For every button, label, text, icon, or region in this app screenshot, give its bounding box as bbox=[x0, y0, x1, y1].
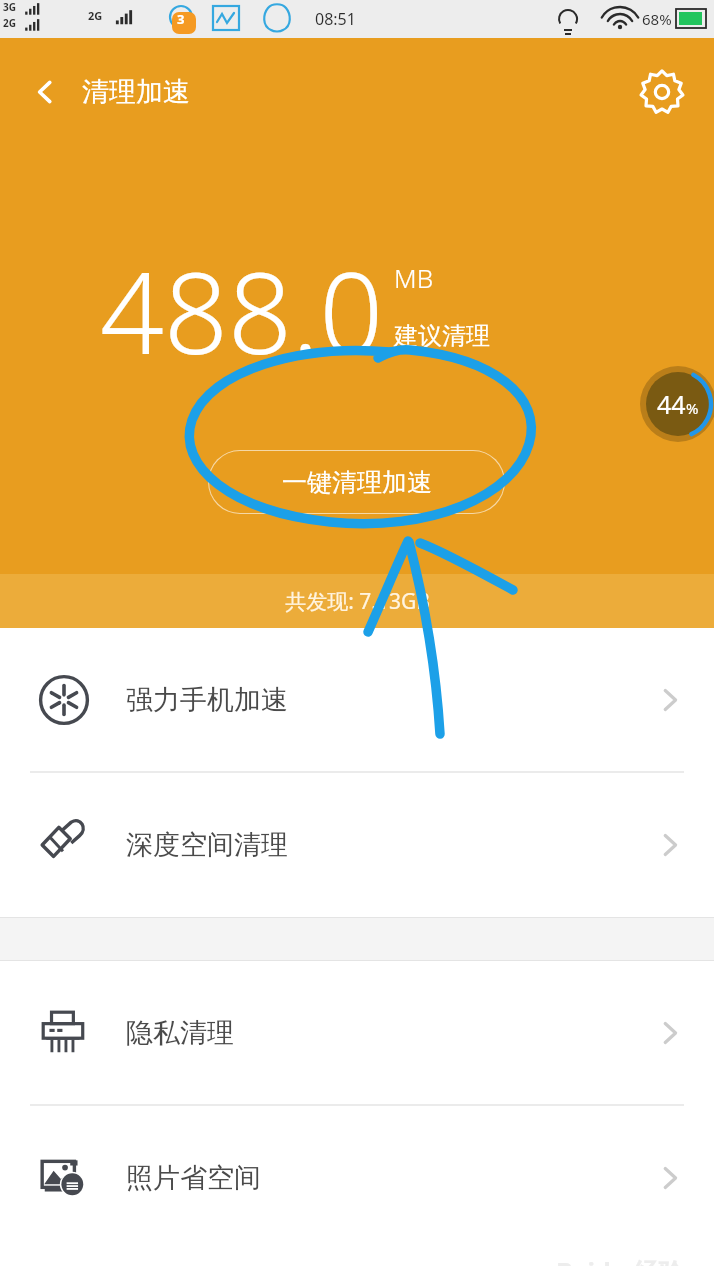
staticText: 3 bbox=[177, 10, 185, 28]
staticText: 68% bbox=[642, 9, 672, 29]
staticText: 深度空间清理 bbox=[126, 828, 288, 862]
staticText: 488.0 bbox=[100, 234, 384, 387]
staticText: 建议清理 bbox=[394, 321, 490, 351]
staticText: 44 bbox=[657, 387, 686, 421]
button[interactable]: 照片省空间 bbox=[0, 1106, 714, 1250]
button[interactable]: Settings bbox=[632, 62, 692, 122]
staticText: Baidu 经验 bbox=[556, 1254, 684, 1266]
staticText: 3G bbox=[3, 0, 16, 14]
staticText: 共发现: 7.13GB bbox=[285, 587, 430, 616]
staticText: 强力手机加速 bbox=[126, 683, 288, 717]
button[interactable]: Memory usage 44 percent bbox=[640, 366, 714, 442]
button[interactable]: 一键清理加速 bbox=[208, 450, 505, 514]
staticText: 一键清理加速 bbox=[282, 467, 432, 498]
staticText: 清理加速 bbox=[82, 75, 190, 109]
button[interactable]: 强力手机加速 bbox=[0, 628, 714, 772]
staticText: 2G bbox=[88, 8, 103, 23]
staticText: 照片省空间 bbox=[126, 1161, 261, 1195]
button[interactable]: 隐私清理 bbox=[0, 961, 714, 1105]
button[interactable]: 深度空间清理 bbox=[0, 773, 714, 917]
staticText: 2G bbox=[3, 16, 16, 30]
staticText: % bbox=[686, 398, 699, 418]
staticText: 隐私清理 bbox=[126, 1016, 234, 1050]
button[interactable]: Back bbox=[18, 65, 72, 119]
staticText: MB bbox=[394, 260, 434, 295]
staticText: 08:51 bbox=[315, 8, 356, 30]
